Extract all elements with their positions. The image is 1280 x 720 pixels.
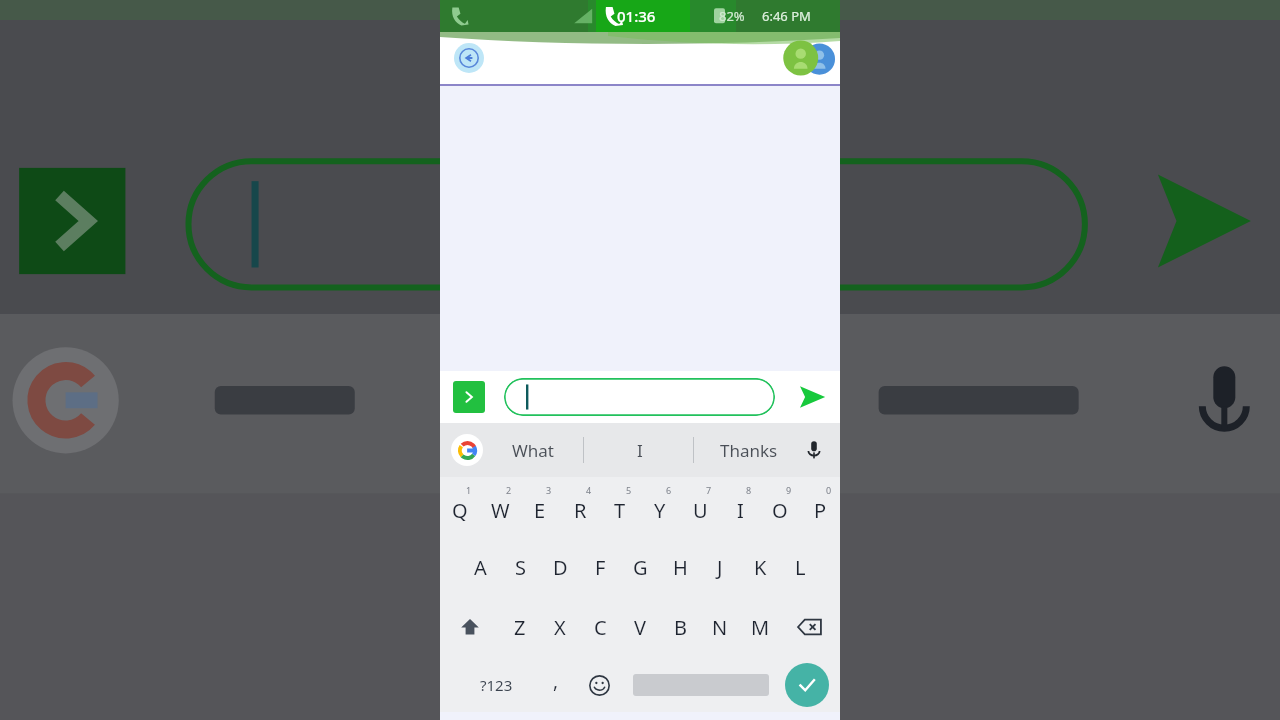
- button[interactable]: Send: [794, 379, 830, 415]
- button[interactable]: J: [700, 537, 740, 597]
- staticText: K: [754, 554, 767, 581]
- button[interactable]: Thanks: [702, 423, 796, 477]
- staticText: 7: [706, 484, 712, 496]
- staticText: .: [794, 668, 800, 694]
- staticText: N: [712, 614, 728, 641]
- button[interactable]: V: [620, 597, 660, 657]
- button[interactable]: Z: [500, 597, 540, 657]
- staticText: 6: [666, 484, 672, 496]
- staticText: Thanks: [720, 439, 778, 462]
- staticText: L: [795, 554, 806, 581]
- button[interactable]: Backspace: [780, 597, 840, 657]
- staticText: U: [693, 497, 708, 524]
- staticText: O: [772, 497, 788, 524]
- staticText: E: [534, 497, 546, 524]
- staticText: Z: [514, 614, 526, 641]
- staticText: J: [717, 554, 723, 581]
- button[interactable]: Voice input: [797, 433, 831, 467]
- staticText: I: [737, 497, 744, 524]
- button[interactable]: H: [660, 537, 700, 597]
- staticText: G: [633, 554, 648, 581]
- staticText: D: [553, 554, 568, 581]
- staticText: What: [512, 439, 554, 462]
- button[interactable]: D: [540, 537, 580, 597]
- button[interactable]: X: [540, 597, 580, 657]
- button[interactable]: 9: [760, 477, 800, 537]
- button[interactable]: 7: [680, 477, 720, 537]
- button[interactable]: Expand: [453, 381, 485, 413]
- button[interactable]: 8: [720, 477, 760, 537]
- staticText: F: [595, 554, 606, 581]
- button[interactable]: S: [500, 537, 540, 597]
- staticText: 6:46 PM: [762, 7, 811, 25]
- button[interactable]: F: [580, 537, 620, 597]
- staticText: 2: [506, 484, 512, 496]
- staticText: ,: [553, 668, 559, 694]
- button[interactable]: A: [460, 537, 500, 597]
- button[interactable]: N: [700, 597, 740, 657]
- button[interactable]: Shift: [440, 597, 500, 657]
- staticText: P: [814, 497, 827, 524]
- button[interactable]: I: [600, 423, 680, 477]
- button[interactable]: Emoji: [578, 664, 620, 706]
- staticText: 4: [586, 484, 592, 496]
- button[interactable]: ?123: [470, 657, 522, 712]
- staticText: 3: [546, 484, 552, 496]
- button[interactable]: ,: [536, 665, 576, 705]
- staticText: X: [554, 614, 566, 641]
- staticText: W: [491, 497, 510, 524]
- button[interactable]: 6: [640, 477, 680, 537]
- staticText: S: [515, 554, 526, 581]
- button[interactable]: K: [740, 537, 780, 597]
- button[interactable]: Enter: [785, 663, 829, 707]
- staticText: 01:36: [617, 6, 656, 26]
- staticText: R: [574, 497, 587, 524]
- button[interactable]: [504, 378, 775, 416]
- staticText: V: [634, 614, 646, 641]
- staticText: T: [614, 497, 626, 524]
- staticText: Y: [654, 497, 666, 524]
- button[interactable]: 4: [560, 477, 600, 537]
- staticText: 5: [626, 484, 632, 496]
- button[interactable]: Google: [451, 434, 483, 466]
- button[interactable]: C: [580, 597, 620, 657]
- staticText: 8: [746, 484, 752, 496]
- button[interactable]: 5: [600, 477, 640, 537]
- staticText: A: [474, 554, 487, 581]
- button[interactable]: Contacts: [782, 32, 834, 84]
- button[interactable]: L: [780, 537, 820, 597]
- staticText: 82%: [719, 7, 745, 25]
- button[interactable]: G: [620, 537, 660, 597]
- staticText: H: [673, 554, 688, 581]
- button[interactable]: B: [660, 597, 700, 657]
- button[interactable]: 3: [520, 477, 560, 537]
- button[interactable]: 0: [800, 477, 840, 537]
- staticText: 1: [466, 484, 472, 496]
- button[interactable]: What: [490, 423, 575, 477]
- button[interactable]: M: [740, 597, 780, 657]
- staticText: ?123: [480, 675, 513, 695]
- button[interactable]: Back: [454, 43, 484, 73]
- staticText: B: [674, 614, 687, 641]
- button[interactable]: .: [779, 667, 815, 703]
- staticText: C: [594, 614, 607, 641]
- staticText: I: [637, 439, 643, 462]
- button[interactable]: 1: [440, 477, 480, 537]
- staticText: M: [751, 614, 770, 641]
- staticText: 9: [786, 484, 792, 496]
- button[interactable]: 2: [480, 477, 520, 537]
- staticText: Q: [452, 497, 468, 524]
- staticText: 0: [826, 484, 832, 496]
